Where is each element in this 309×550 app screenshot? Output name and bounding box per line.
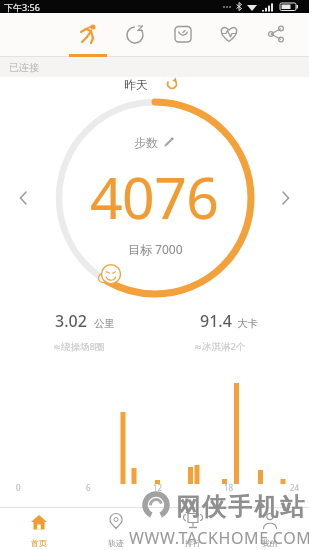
staticText: 91.4 bbox=[200, 310, 232, 332]
button[interactable] bbox=[165, 77, 179, 91]
staticText: 已连接 bbox=[9, 61, 39, 74]
button[interactable] bbox=[275, 186, 299, 210]
staticText: 首页 bbox=[31, 538, 47, 548]
button[interactable] bbox=[232, 507, 309, 550]
staticText: 大卡 bbox=[237, 317, 258, 330]
staticText: ≈绕操场8圈 bbox=[53, 340, 105, 353]
staticText: 排行 bbox=[185, 538, 201, 548]
staticText: 昨天 bbox=[124, 77, 148, 92]
button[interactable] bbox=[254, 15, 298, 55]
button[interactable] bbox=[207, 15, 251, 55]
staticText: 0 bbox=[16, 482, 21, 493]
button[interactable] bbox=[1, 507, 78, 550]
button[interactable]: 昨天 bbox=[96, 74, 176, 94]
staticText: 步数 bbox=[134, 135, 158, 150]
staticText: WWW.TACKHOME.COM bbox=[129, 527, 309, 547]
button[interactable] bbox=[78, 507, 155, 550]
staticText: 6 bbox=[86, 482, 91, 493]
staticText: 4076 bbox=[90, 158, 219, 236]
staticText: 3.02 bbox=[55, 310, 87, 332]
staticText: ≈冰淇淋2个 bbox=[194, 340, 246, 353]
staticText: 24 bbox=[290, 482, 300, 493]
staticText: 轨迹 bbox=[108, 538, 124, 548]
staticText: 18 bbox=[224, 482, 234, 493]
staticText: 下午3:56 bbox=[4, 1, 40, 13]
staticText: 我的 bbox=[262, 538, 278, 548]
staticText: 12 bbox=[153, 482, 163, 493]
button[interactable] bbox=[10, 186, 34, 210]
staticText: 网侠手机站 bbox=[175, 492, 305, 522]
button[interactable] bbox=[155, 507, 232, 550]
button[interactable] bbox=[163, 136, 175, 148]
button[interactable] bbox=[114, 15, 158, 55]
staticText: 公里 bbox=[94, 317, 115, 330]
button[interactable] bbox=[66, 15, 110, 55]
staticText: 目标 7000 bbox=[128, 241, 183, 257]
button[interactable] bbox=[161, 15, 205, 55]
